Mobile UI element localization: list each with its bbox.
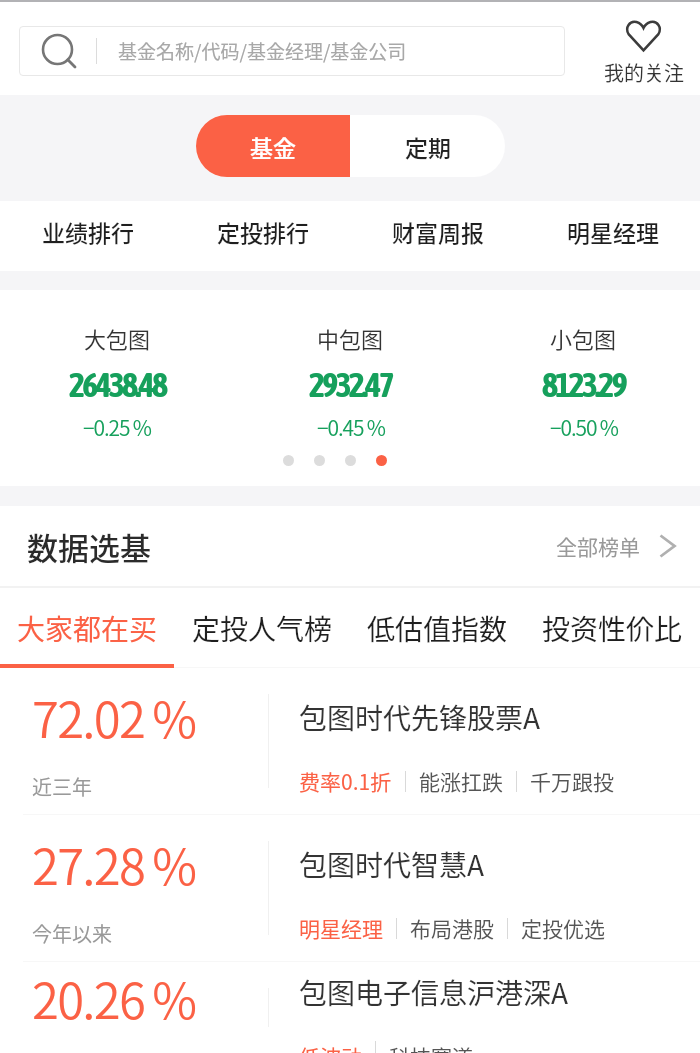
staticText: 定期 bbox=[405, 130, 451, 163]
staticText: −0.25 % bbox=[83, 412, 151, 442]
staticText: 近三年 bbox=[32, 772, 92, 801]
button[interactable]: 大家都在买 bbox=[0, 588, 175, 668]
staticText: 20.26 % bbox=[32, 962, 196, 1033]
staticText: 投资性价比 bbox=[542, 608, 683, 649]
staticText: 我的关注 bbox=[604, 58, 684, 87]
staticText: 包图时代先锋股票A bbox=[299, 697, 541, 738]
staticText: 千万跟投 bbox=[530, 766, 614, 796]
staticText: 低波动 bbox=[299, 1041, 362, 1053]
staticText: 26438.48 bbox=[69, 365, 166, 404]
button[interactable]: 20.26 % bbox=[0, 962, 700, 1053]
staticText: 包图电子信息沪港深A bbox=[299, 972, 569, 1013]
button[interactable]: 小包图 bbox=[467, 322, 700, 442]
staticText: 费率0.1折 bbox=[299, 766, 392, 796]
staticText: −0.45 % bbox=[317, 412, 385, 442]
button[interactable]: 投资性价比 bbox=[525, 588, 700, 668]
button[interactable]: 明星经理 bbox=[525, 201, 700, 262]
button[interactable]: 财富周报 bbox=[350, 201, 525, 262]
staticText: −0.50 % bbox=[550, 412, 618, 442]
button[interactable]: 全部榜单 bbox=[556, 531, 676, 561]
staticText: 2932.47 bbox=[309, 365, 392, 404]
staticText: 布局港股 bbox=[410, 913, 494, 943]
staticText: 8123.29 bbox=[542, 365, 625, 404]
staticText: 小包图 bbox=[550, 322, 617, 354]
button[interactable]: 基金 bbox=[196, 115, 350, 177]
staticText: 定投人气榜 bbox=[192, 608, 333, 649]
button[interactable]: 低估值指数 bbox=[350, 588, 525, 668]
staticText: 中包图 bbox=[317, 322, 384, 354]
staticText: 定投优选 bbox=[521, 913, 605, 943]
staticText: 财富周报 bbox=[392, 215, 484, 248]
staticText: 包图时代智慧A bbox=[299, 844, 485, 885]
staticText: 能涨扛跌 bbox=[419, 766, 503, 796]
staticText: 今年以来 bbox=[32, 919, 112, 948]
staticText: 大包图 bbox=[84, 322, 151, 354]
button[interactable]: 72.02 % bbox=[0, 668, 700, 814]
staticText: 数据选基 bbox=[27, 524, 151, 569]
button[interactable]: 27.28 % bbox=[0, 815, 700, 961]
staticText: 明星经理 bbox=[567, 215, 659, 248]
button[interactable]: 基金名称/代码/基金经理/基金公司 bbox=[19, 26, 565, 76]
staticText: 科技赛道 bbox=[389, 1041, 473, 1053]
button[interactable]: 中包图 bbox=[234, 322, 467, 442]
button[interactable]: 定投排行 bbox=[175, 201, 350, 262]
staticText: 基金 bbox=[250, 130, 296, 163]
button[interactable]: 我的关注 bbox=[587, 21, 700, 95]
staticText: 业绩排行 bbox=[42, 215, 134, 248]
button[interactable]: 大包图 bbox=[0, 322, 234, 442]
staticText: 大家都在买 bbox=[17, 608, 158, 649]
button[interactable]: 定期 bbox=[350, 115, 505, 177]
staticText: 全部榜单 bbox=[556, 531, 640, 561]
staticText: 基金名称/代码/基金经理/基金公司 bbox=[118, 37, 407, 65]
staticText: 72.02 % bbox=[32, 681, 196, 752]
staticText: 低估值指数 bbox=[367, 608, 508, 649]
staticText: 定投排行 bbox=[217, 215, 309, 248]
staticText: 27.28 % bbox=[32, 828, 196, 899]
button[interactable]: 业绩排行 bbox=[0, 201, 175, 262]
button[interactable]: 定投人气榜 bbox=[175, 588, 350, 668]
staticText: 明星经理 bbox=[299, 913, 383, 943]
